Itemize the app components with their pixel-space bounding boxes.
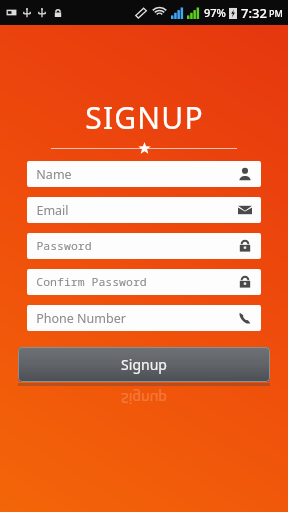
staticText: Signup bbox=[121, 389, 167, 408]
button[interactable]: Password bbox=[27, 233, 261, 259]
staticText: Email bbox=[36, 202, 69, 219]
staticText: 7:32 bbox=[241, 4, 267, 22]
staticText: Signup bbox=[121, 355, 167, 374]
staticText: Name bbox=[36, 166, 72, 183]
staticText: PM bbox=[269, 7, 283, 19]
button[interactable]: Email bbox=[27, 197, 261, 223]
staticText: Password bbox=[36, 238, 92, 254]
staticText: Phone Number bbox=[36, 310, 126, 327]
button[interactable]: Confirm Password bbox=[27, 269, 261, 295]
button[interactable]: Phone Number bbox=[27, 305, 261, 331]
staticText: SIGNUP bbox=[85, 97, 204, 138]
staticText: 97% bbox=[204, 5, 226, 20]
button[interactable]: Name bbox=[27, 161, 261, 187]
staticText: Confirm Password bbox=[36, 274, 147, 290]
button[interactable]: Signup bbox=[18, 347, 270, 382]
